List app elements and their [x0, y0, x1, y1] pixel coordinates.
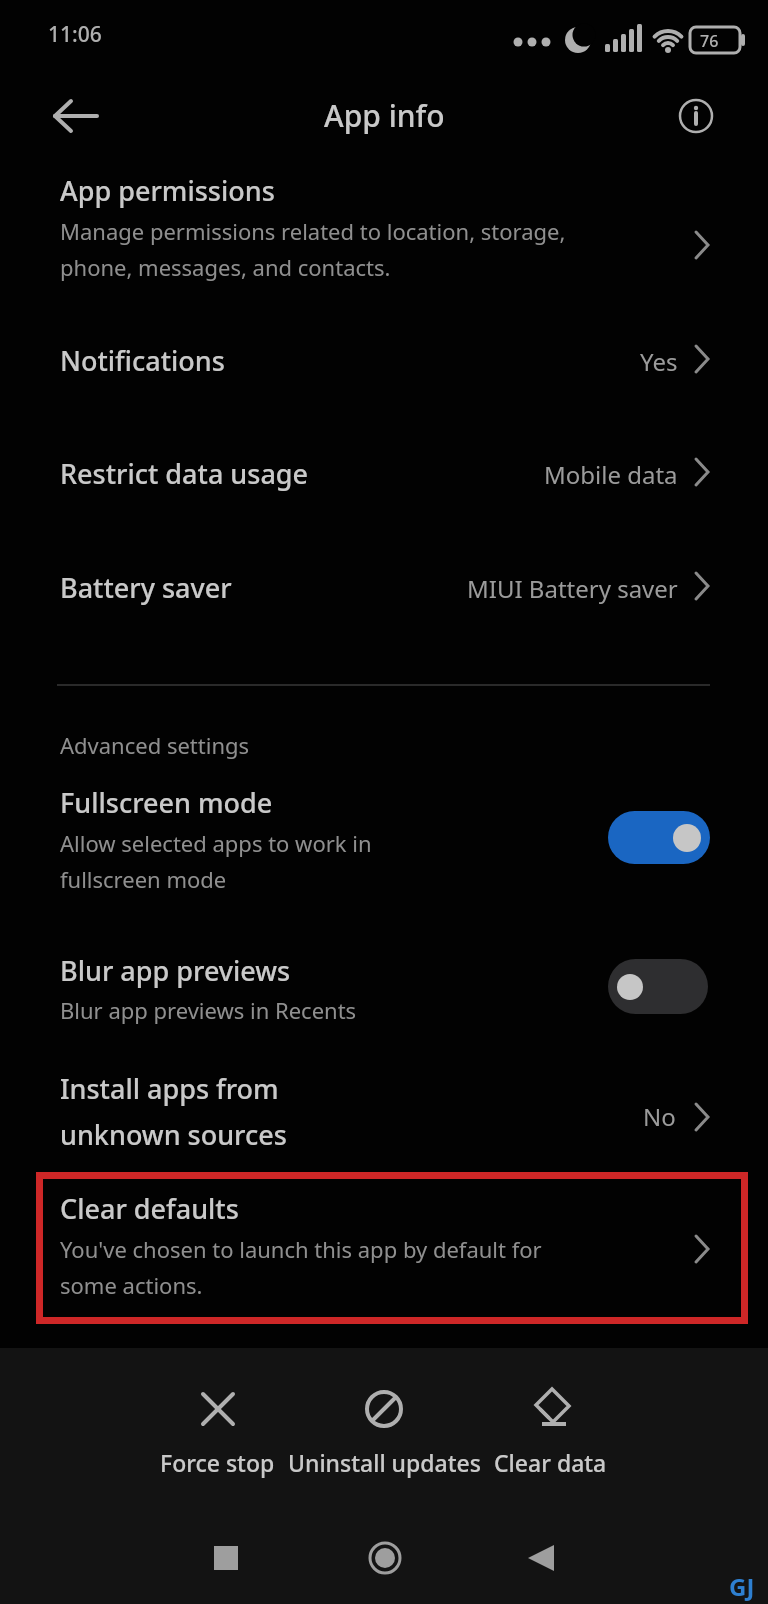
staticText: App info [324, 95, 445, 136]
staticText: Clear data [494, 1447, 607, 1478]
button[interactable]: Restrict data usage [0, 443, 768, 513]
staticText: Install apps from unknown sources [60, 1070, 287, 1153]
button[interactable]: App permissions [0, 160, 768, 305]
button[interactable]: Force stop [140, 1373, 295, 1478]
staticText: 11:06 [48, 20, 102, 49]
button[interactable] [660, 88, 732, 144]
staticText: Clear defaults [60, 1190, 239, 1227]
button[interactable]: Fullscreen mode [0, 772, 768, 907]
button[interactable] [40, 88, 112, 144]
staticText: Force stop [160, 1447, 275, 1478]
button[interactable] [168, 1528, 283, 1588]
staticText: Fullscreen mode [60, 784, 273, 821]
button[interactable]: Install apps from unknown sources [0, 1062, 768, 1167]
button[interactable]: Blur app previews [0, 940, 768, 1040]
button[interactable]: Clear defaults [36, 1172, 748, 1324]
staticText: You've chosen to launch this app by defa… [60, 1234, 542, 1300]
staticText: Advanced settings [60, 730, 250, 760]
staticText: Notifications [60, 342, 225, 379]
staticText: Uninstall updates [288, 1447, 481, 1478]
staticText: Yes [640, 345, 678, 378]
staticText: Blur app previews [60, 952, 291, 989]
staticText: No [643, 1100, 676, 1133]
staticText: Battery saver [60, 569, 232, 606]
button[interactable]: Uninstall updates [274, 1373, 494, 1478]
button[interactable] [483, 1528, 598, 1588]
staticText: GJ [729, 1570, 755, 1603]
button[interactable] [327, 1528, 442, 1588]
staticText: Manage permissions related to location, … [60, 216, 566, 282]
button[interactable]: Notifications [0, 330, 768, 400]
button[interactable]: Clear data [478, 1373, 623, 1478]
staticText: Blur app previews in Recents [60, 995, 357, 1025]
staticText: Restrict data usage [60, 455, 309, 492]
staticText: MIUI Battery saver [467, 572, 678, 605]
button[interactable]: Battery saver [0, 557, 768, 627]
staticText: Allow selected apps to work in fullscree… [60, 828, 372, 894]
staticText: 76 [700, 30, 719, 52]
staticText: Mobile data [544, 458, 678, 491]
staticText: App permissions [60, 172, 275, 209]
